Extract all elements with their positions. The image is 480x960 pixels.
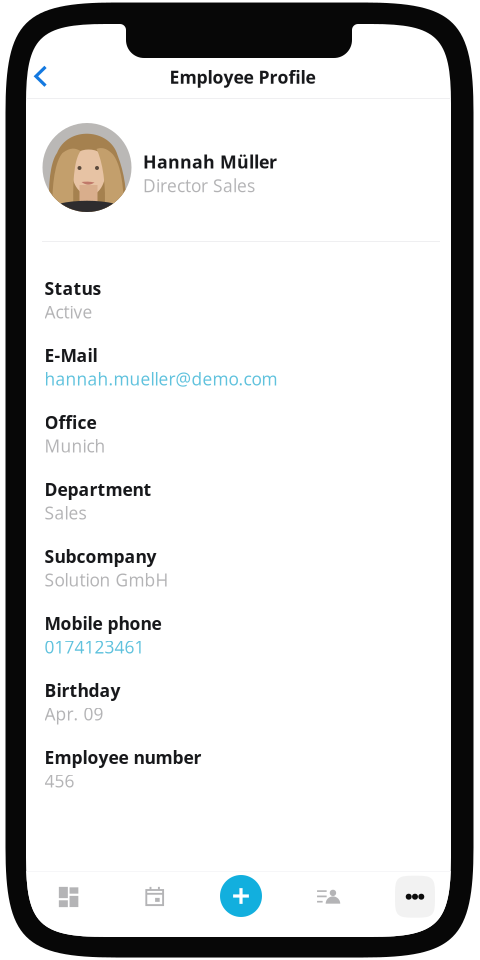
staticText: Status [44,276,101,300]
staticText: 456 [44,769,74,793]
button[interactable]: Mobile phone [44,611,424,655]
staticText: E-Mail [44,343,97,367]
button[interactable]: Subcompany [44,544,424,588]
staticText: Subcompany [44,544,156,568]
staticText: Active [44,300,92,324]
staticText: Munich [44,434,105,458]
button[interactable]: Birthday [44,678,424,722]
staticText: Department [44,477,151,501]
button[interactable]: Calendar [113,868,197,924]
button[interactable]: Contacts [286,869,370,925]
staticText: Director Sales [143,174,255,197]
button[interactable]: Add [199,868,283,924]
staticText: Apr. 09 [44,702,103,726]
staticText: 0174123461 [44,635,144,659]
staticText: Solution GmbH [44,568,168,592]
button[interactable]: Status [44,276,424,320]
staticText: Sales [44,501,86,525]
staticText: Birthday [44,678,120,702]
button[interactable]: Back [19,53,63,99]
button[interactable]: Department [44,477,424,521]
staticText: Mobile phone [44,611,161,635]
staticText: Hannah Müller [143,149,277,174]
staticText: hannah.mueller@demo.com [44,367,277,391]
button[interactable]: Office [44,410,424,454]
button[interactable]: Dashboard [27,869,111,925]
staticText: Employee Profile [170,65,316,89]
staticText: Employee number [44,745,201,769]
button[interactable]: Employee number [44,745,424,789]
button[interactable]: E-Mail [44,343,424,387]
button[interactable]: More [373,869,457,925]
staticText: Office [44,410,96,434]
